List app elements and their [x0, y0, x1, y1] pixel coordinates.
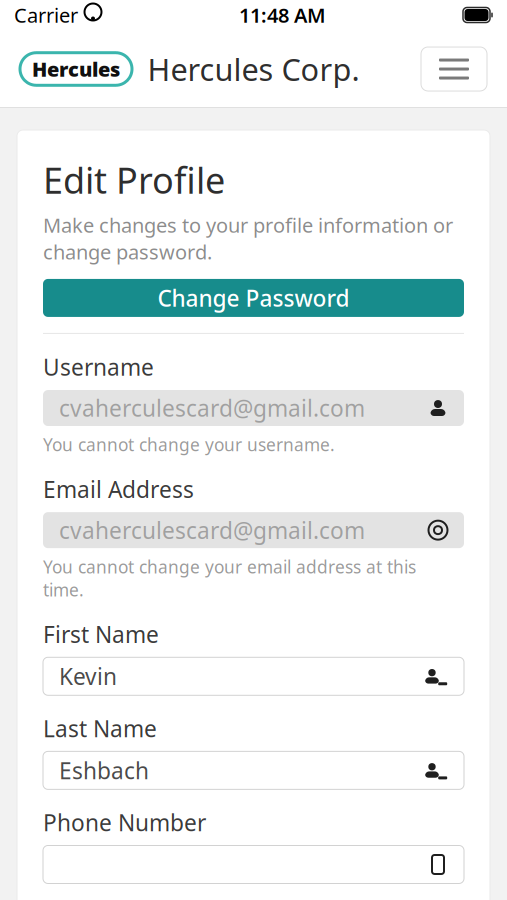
- staticText: 11:48 AM: [239, 2, 326, 28]
- staticText: First Name: [43, 619, 159, 649]
- staticText: Hercules Corp.: [147, 49, 359, 89]
- staticText: You cannot change your email address at …: [43, 555, 416, 601]
- staticText: Last Name: [43, 713, 157, 743]
- staticText: Make changes to your profile information…: [43, 212, 453, 265]
- button[interactable]: Eshbach: [43, 751, 464, 789]
- button[interactable]: Menu: [421, 47, 487, 91]
- button[interactable]: [43, 845, 464, 883]
- staticText: Eshbach: [59, 755, 149, 785]
- staticText: cvaherculescard@gmail.com: [59, 393, 365, 423]
- staticText: You cannot change your username.: [43, 433, 335, 456]
- button[interactable]: Kevin: [43, 657, 464, 695]
- button[interactable]: Hercules home: [20, 53, 132, 85]
- staticText: Edit Profile: [43, 156, 225, 204]
- staticText: Kevin: [59, 661, 117, 691]
- staticText: Hercules: [32, 56, 120, 82]
- staticText: Phone Number: [43, 807, 206, 837]
- staticText: Change Password: [157, 283, 349, 313]
- staticText: Email Address: [43, 474, 194, 504]
- staticText: Carrier: [14, 2, 78, 28]
- staticText: Username: [43, 352, 154, 382]
- button[interactable]: Change Password: [43, 279, 464, 317]
- staticText: cvaherculescard@gmail.com: [59, 515, 365, 545]
